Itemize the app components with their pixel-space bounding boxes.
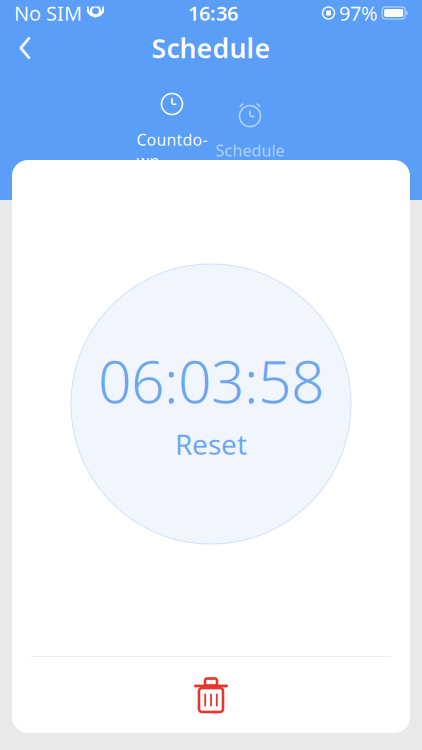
- staticText: Reset: [175, 425, 247, 463]
- staticText: Schedule: [151, 30, 270, 66]
- staticText: No SIM: [14, 0, 82, 26]
- staticText: Schedule: [215, 140, 284, 161]
- staticText: Countdown: [136, 129, 207, 171]
- button[interactable]: Back: [10, 31, 40, 65]
- button[interactable]: Delete: [12, 657, 410, 733]
- button[interactable]: Schedule: [211, 97, 289, 165]
- staticText: 06:03:58: [98, 341, 324, 419]
- staticText: 16:36: [188, 0, 238, 26]
- button[interactable]: Countdown: [133, 86, 211, 175]
- staticText: 97%: [339, 0, 378, 26]
- button[interactable]: 06:03:58: [71, 264, 351, 544]
